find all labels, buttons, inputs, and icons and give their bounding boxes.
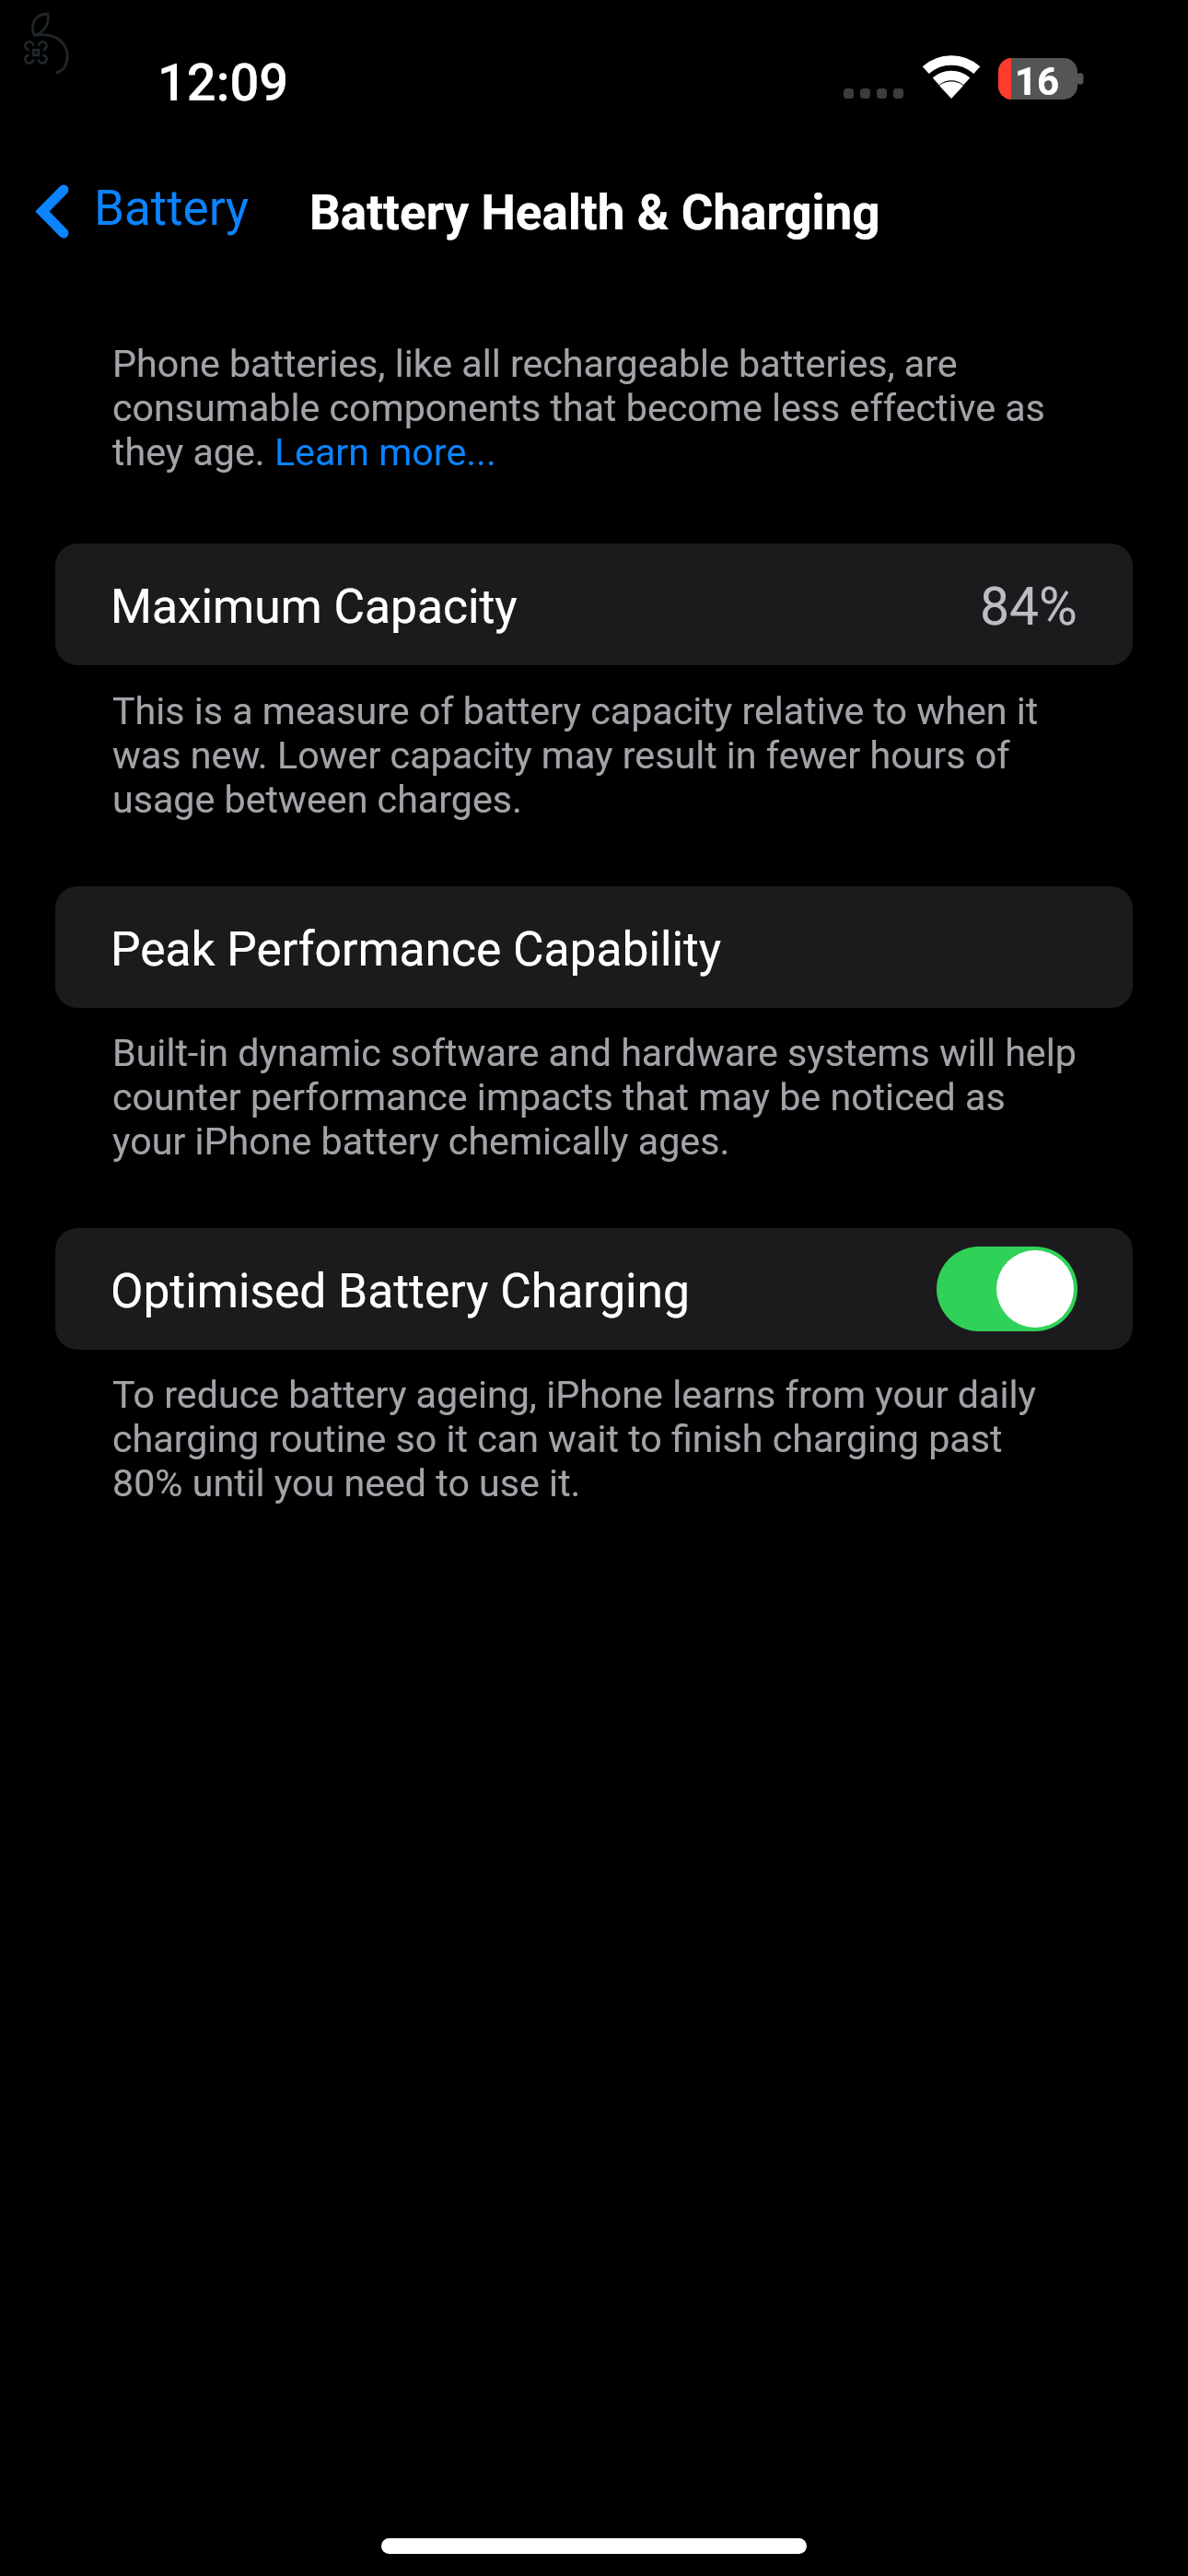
staticText: Optimised Battery Charging: [111, 1263, 690, 1318]
staticText: Peak Performance Capability: [111, 921, 722, 977]
button[interactable]: Battery: [31, 160, 262, 262]
button[interactable]: Maximum Capacity: [55, 544, 1133, 665]
staticText: 12:09: [157, 53, 289, 113]
staticText: Maximum Capacity: [111, 579, 518, 634]
button[interactable]: Peak Performance Capability: [55, 886, 1133, 1008]
staticText: This is a measure of battery capacity re…: [112, 689, 1079, 822]
staticText: Built-in dynamic software and hardware s…: [112, 1031, 1079, 1164]
staticText: To reduce battery ageing, iPhone learns …: [112, 1373, 1079, 1505]
button[interactable]: Learn more about battery health: [273, 431, 499, 477]
button[interactable]: Optimised Battery Charging: [937, 1247, 1077, 1331]
staticText: Battery: [94, 180, 250, 237]
button[interactable]: Optimised Battery Charging: [55, 1228, 1133, 1350]
staticText: Phone batteries, like all rechargeable b…: [112, 342, 1079, 474]
staticText: 16: [1015, 59, 1060, 100]
staticText: Battery Health & Charging: [309, 184, 880, 241]
staticText: 84%: [980, 576, 1077, 638]
